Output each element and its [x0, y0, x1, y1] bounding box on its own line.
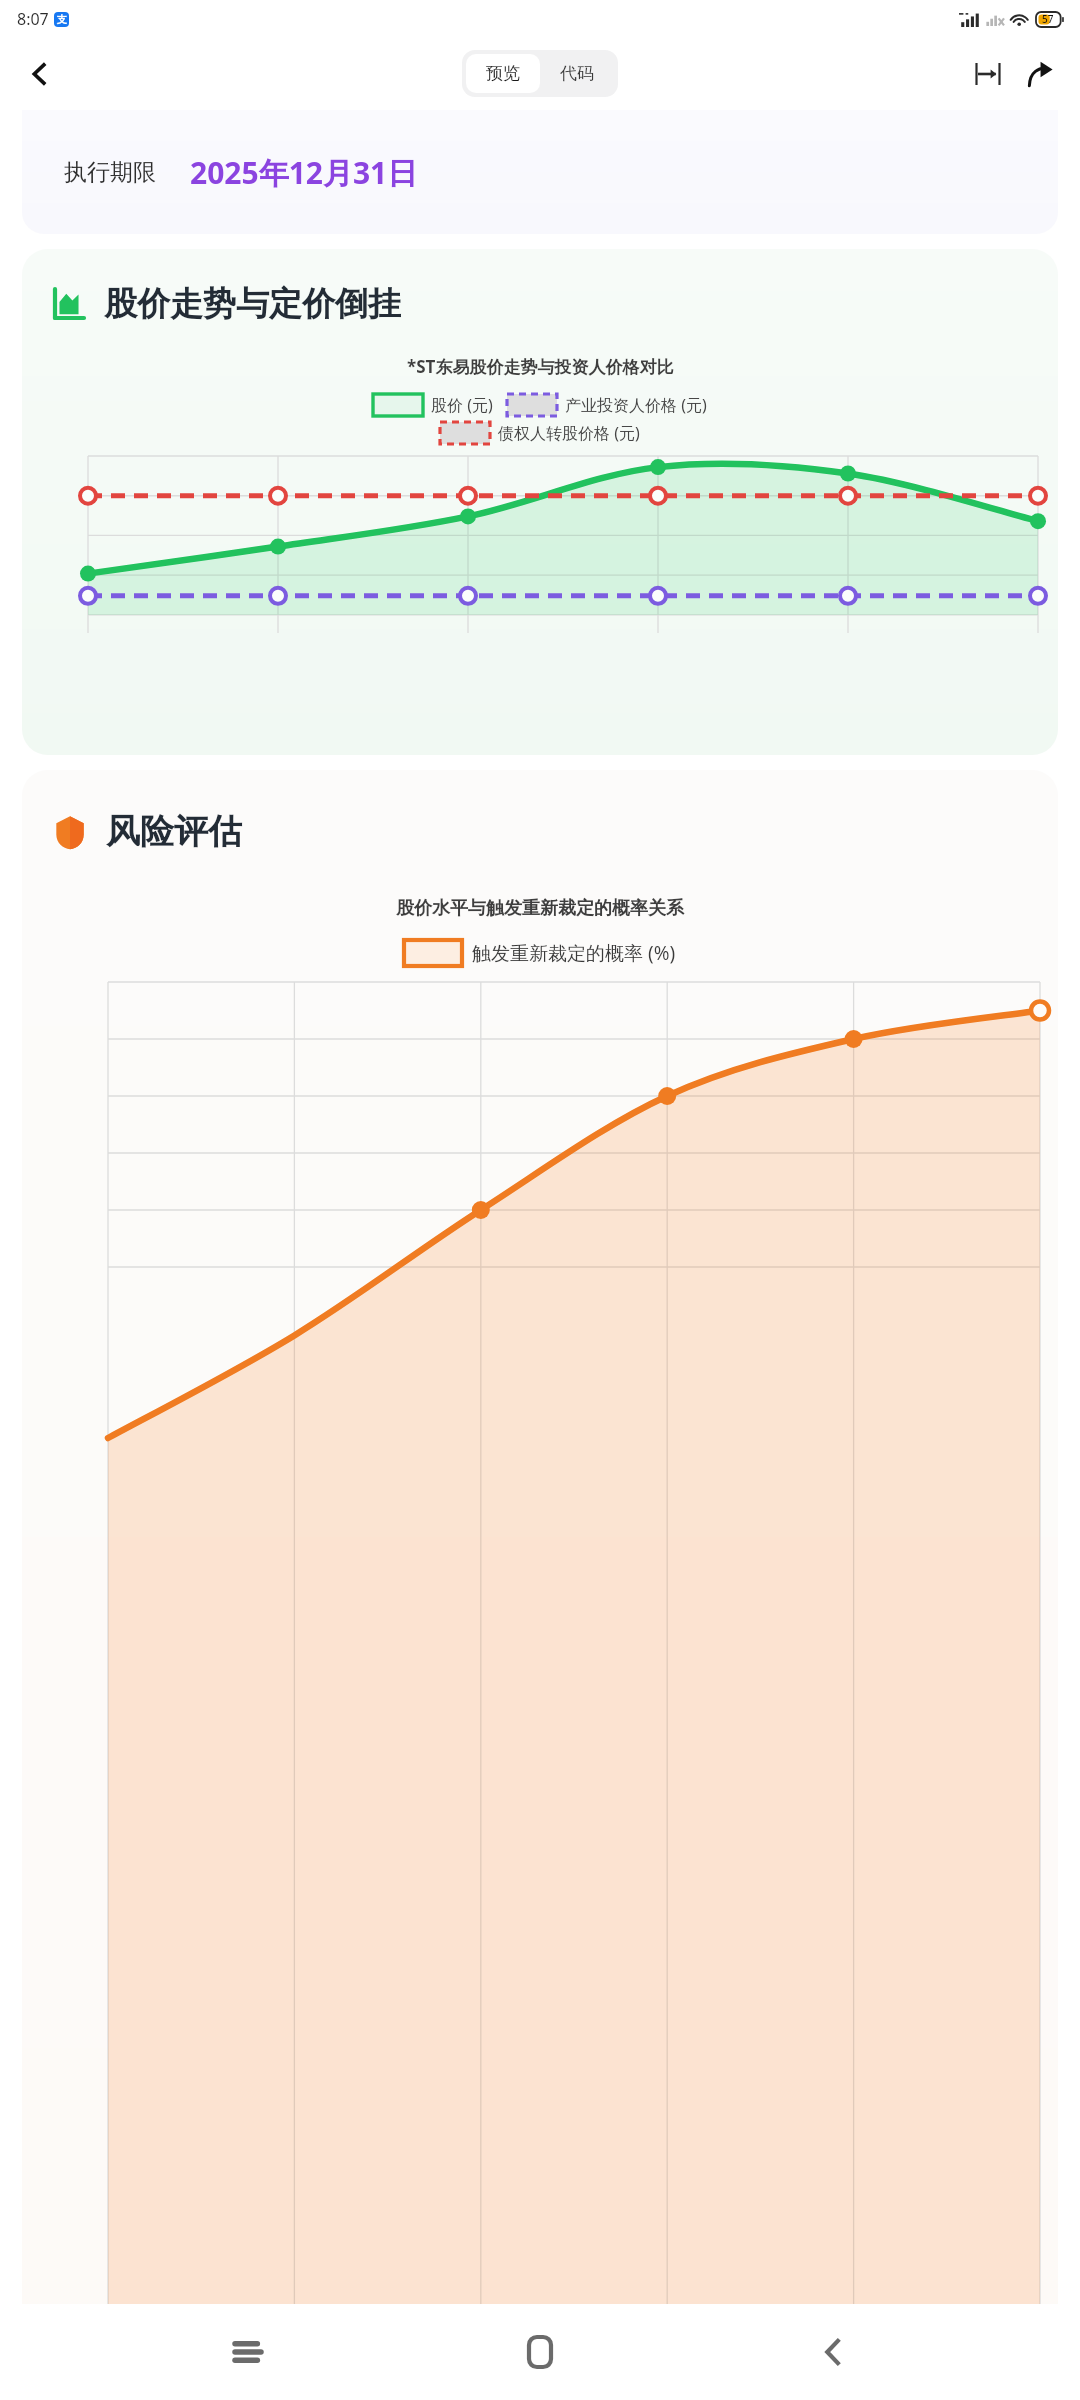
button[interactable]: Back — [788, 2307, 878, 2397]
button[interactable]: Back — [12, 46, 68, 102]
button[interactable]: 风险评估 — [22, 770, 1058, 2304]
staticText: 57 — [1042, 12, 1054, 26]
button[interactable]: 预览 — [466, 54, 540, 93]
button[interactable]: 股价走势与定价倒挂 — [22, 249, 1058, 755]
staticText: 风险评估 — [106, 810, 242, 853]
staticText: 债权人转股价格 (元) — [498, 422, 640, 444]
staticText: 支 — [57, 13, 67, 26]
staticText: 触发重新裁定的概率 (%) — [472, 940, 676, 966]
button[interactable]: Share — [1014, 48, 1066, 100]
button[interactable]: 执行期限 — [22, 110, 1058, 234]
button[interactable]: Recents — [203, 2307, 293, 2397]
staticText: 8:07 — [17, 8, 49, 30]
staticText: 预览 — [486, 63, 520, 84]
button[interactable]: Fit width — [962, 48, 1014, 100]
button[interactable]: 代码 — [540, 54, 614, 93]
staticText: *ST东易股价走势与投资人价格对比 — [407, 355, 674, 378]
staticText: 产业投资人价格 (元) — [565, 394, 707, 416]
staticText: 股价走势与定价倒挂 — [104, 283, 401, 325]
staticText: 2025年12月31日 — [190, 152, 418, 193]
button[interactable]: Home — [495, 2307, 585, 2397]
staticText: 执行期限 — [64, 158, 156, 187]
staticText: 代码 — [560, 63, 594, 84]
staticText: 股价 (元) — [431, 394, 493, 416]
staticText: 股价水平与触发重新裁定的概率关系 — [396, 897, 684, 920]
